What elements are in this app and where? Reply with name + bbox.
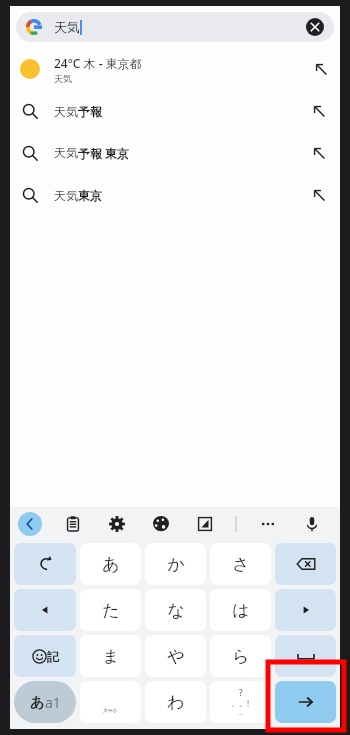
- staticText: や: [167, 646, 185, 667]
- button[interactable]: さ: [210, 543, 271, 585]
- button[interactable]: ENTER: [275, 681, 336, 723]
- staticText: あ: [30, 694, 45, 712]
- staticText: ら: [232, 646, 250, 667]
- button[interactable]: Theme: [148, 511, 174, 537]
- button[interactable]: Handwriting: [192, 511, 218, 537]
- button[interactable]: RIGHT: [275, 589, 336, 631]
- button[interactable]: あ: [80, 543, 141, 585]
- button[interactable]: UNDO: [14, 543, 76, 585]
- button[interactable]: 天気: [10, 174, 340, 216]
- button[interactable]: Voice input: [299, 511, 325, 537]
- staticText: さ: [232, 554, 250, 575]
- button[interactable]: PUNCT: [210, 681, 271, 723]
- staticText: 記: [47, 649, 59, 664]
- button[interactable]: Clear: [306, 18, 324, 36]
- button[interactable]: EMOJI: [14, 635, 76, 677]
- button[interactable]: ら: [210, 635, 271, 677]
- button[interactable]: 天気: [16, 12, 334, 42]
- staticText: 予報 東京: [78, 145, 130, 161]
- staticText: 、: [231, 698, 239, 708]
- button[interactable]: Insert suggestion: [310, 144, 328, 162]
- button[interactable]: や: [145, 635, 206, 677]
- button[interactable]: SPACE: [275, 635, 336, 677]
- button[interactable]: 24°C 木 - 東京都: [10, 48, 340, 90]
- staticText: !: [247, 698, 250, 709]
- staticText: 大⇔小: [103, 707, 118, 713]
- button[interactable]: た: [80, 589, 141, 631]
- button[interactable]: DAKUTEN: [80, 681, 141, 723]
- staticText: 東京: [78, 188, 102, 203]
- button[interactable]: MODE: [14, 681, 76, 723]
- staticText: ?: [239, 687, 243, 698]
- staticText: な: [167, 600, 185, 621]
- button[interactable]: Settings: [104, 511, 130, 537]
- button[interactable]: LEFT: [14, 589, 76, 631]
- staticText: 24°C 木 - 東京都: [54, 55, 142, 71]
- button[interactable]: か: [145, 543, 206, 585]
- staticText: 天気: [54, 104, 78, 119]
- button[interactable]: な: [145, 589, 206, 631]
- staticText: 天気: [54, 73, 72, 84]
- button[interactable]: は: [210, 589, 271, 631]
- staticText: ま: [102, 646, 120, 667]
- staticText: 天気: [54, 145, 78, 160]
- staticText: 。: [239, 698, 247, 708]
- staticText: あ: [102, 554, 120, 575]
- staticText: a1: [45, 693, 61, 712]
- staticText: 予報: [78, 104, 102, 119]
- button[interactable]: 天気: [10, 132, 340, 174]
- staticText: か: [167, 554, 185, 575]
- button[interactable]: Insert suggestion: [310, 186, 328, 204]
- button[interactable]: わ: [145, 681, 206, 723]
- button[interactable]: Back: [18, 512, 42, 536]
- button[interactable]: ま: [80, 635, 141, 677]
- button[interactable]: More options: [255, 511, 281, 537]
- staticText: 天気: [54, 188, 78, 203]
- staticText: 天気: [54, 19, 80, 35]
- button[interactable]: BACKSPACE: [275, 543, 336, 585]
- staticText: わ: [167, 692, 185, 713]
- staticText: は: [232, 600, 250, 621]
- staticText: た: [102, 600, 120, 621]
- button[interactable]: Clipboard: [60, 511, 86, 537]
- button[interactable]: 天気: [10, 90, 340, 132]
- button[interactable]: Insert suggestion: [312, 60, 330, 78]
- staticText: ...: [238, 709, 243, 717]
- button[interactable]: Insert suggestion: [310, 102, 328, 120]
